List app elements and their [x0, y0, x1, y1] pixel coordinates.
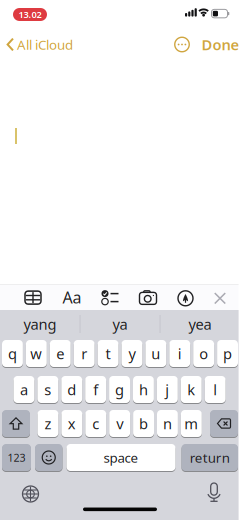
button[interactable]: d — [61, 375, 82, 403]
button[interactable]: r — [74, 339, 95, 367]
button[interactable]: z — [37, 409, 58, 437]
button[interactable]: More options — [172, 34, 192, 54]
staticText: i — [178, 344, 182, 363]
button[interactable]: u — [145, 339, 166, 367]
button[interactable]: m — [181, 409, 202, 437]
staticText: d — [67, 380, 76, 399]
staticText: z — [44, 414, 51, 433]
staticText: t — [105, 344, 110, 363]
staticText: k — [187, 380, 195, 399]
staticText: f — [93, 380, 98, 399]
button[interactable]: Next keyboard — [18, 482, 42, 506]
staticText: w — [30, 344, 42, 363]
button[interactable]: v — [109, 409, 130, 437]
button[interactable]: Checklist — [95, 286, 125, 310]
button[interactable]: yang — [1, 311, 79, 337]
staticText: h — [139, 380, 148, 399]
staticText: e — [56, 344, 64, 363]
button[interactable]: g — [109, 375, 130, 403]
button[interactable]: t — [98, 339, 118, 367]
staticText: n — [163, 414, 172, 433]
button[interactable]: Emoji — [35, 443, 62, 471]
staticText: Aa — [62, 287, 81, 308]
button[interactable]: s — [37, 375, 58, 403]
button[interactable]: c — [85, 409, 106, 437]
button[interactable]: Delete — [210, 409, 238, 437]
button[interactable]: 123 — [2, 443, 31, 471]
button[interactable]: x — [61, 409, 82, 437]
button[interactable]: Back to All iCloud — [0, 27, 80, 61]
button[interactable]: o — [193, 339, 214, 367]
staticText: v — [116, 414, 123, 433]
button[interactable]: p — [217, 339, 238, 367]
staticText: s — [44, 380, 51, 399]
button[interactable]: yea — [161, 311, 239, 337]
staticText: yea — [188, 314, 211, 334]
staticText: ya — [112, 314, 127, 334]
staticText: 13.02 — [18, 8, 41, 21]
staticText: m — [184, 414, 198, 433]
staticText: a — [20, 380, 28, 399]
staticText: x — [68, 414, 76, 433]
staticText: g — [115, 380, 124, 399]
button[interactable]: l — [205, 375, 226, 403]
staticText: c — [92, 414, 99, 433]
button[interactable]: space — [66, 443, 175, 471]
staticText: q — [8, 344, 17, 363]
staticText: y — [128, 344, 135, 363]
button[interactable]: e — [50, 339, 71, 367]
button[interactable]: Markup — [170, 286, 200, 310]
button[interactable]: Dismiss keyboard tools — [207, 286, 233, 310]
button[interactable]: b — [133, 409, 154, 437]
staticText: j — [165, 380, 169, 399]
button[interactable]: n — [157, 409, 178, 437]
staticText: p — [223, 344, 232, 363]
button[interactable]: Shift — [2, 409, 30, 437]
button[interactable]: a — [13, 375, 34, 403]
button[interactable]: w — [26, 339, 47, 367]
button[interactable]: j — [157, 375, 178, 403]
staticText: o — [199, 344, 208, 363]
button[interactable]: y — [121, 339, 142, 367]
staticText: r — [81, 344, 87, 363]
button[interactable]: i — [169, 339, 190, 367]
staticText: u — [151, 344, 160, 363]
button[interactable]: Insert table — [18, 286, 48, 310]
button[interactable]: Dictate — [202, 480, 226, 504]
staticText: All iCloud — [17, 36, 73, 53]
button[interactable]: return — [181, 443, 238, 471]
button[interactable]: Done — [193, 29, 240, 59]
button[interactable]: Insert photo — [133, 286, 163, 310]
staticText: 123 — [7, 450, 25, 465]
button[interactable]: f — [85, 375, 106, 403]
button[interactable]: k — [181, 375, 202, 403]
button[interactable]: ya — [81, 311, 159, 337]
staticText: b — [139, 414, 148, 433]
button[interactable]: Text formatting — [57, 285, 87, 309]
button[interactable]: h — [133, 375, 154, 403]
button[interactable]: q — [2, 339, 23, 367]
staticText: Done — [201, 35, 239, 54]
staticText: return — [190, 449, 230, 466]
staticText: yang — [23, 314, 56, 334]
staticText: space — [103, 449, 138, 466]
staticText: l — [213, 380, 217, 399]
